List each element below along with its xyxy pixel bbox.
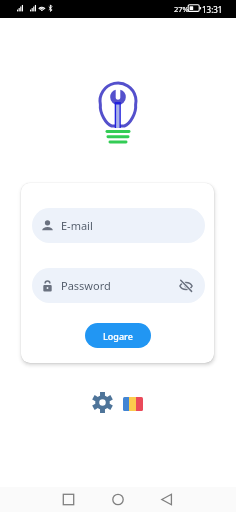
button[interactable]: Password bbox=[32, 268, 205, 303]
staticText: Password bbox=[61, 278, 111, 293]
button[interactable]: Toggle password visibility bbox=[177, 277, 195, 295]
staticText: E-mail bbox=[61, 218, 93, 233]
button[interactable]: Logare bbox=[85, 323, 151, 348]
staticText: 13:31 bbox=[202, 4, 223, 15]
staticText: Logare bbox=[103, 330, 133, 342]
button[interactable]: Language bbox=[120, 394, 146, 414]
staticText: 27% bbox=[174, 4, 189, 14]
button[interactable]: Settings bbox=[90, 390, 115, 415]
button[interactable]: E-mail bbox=[32, 208, 205, 243]
